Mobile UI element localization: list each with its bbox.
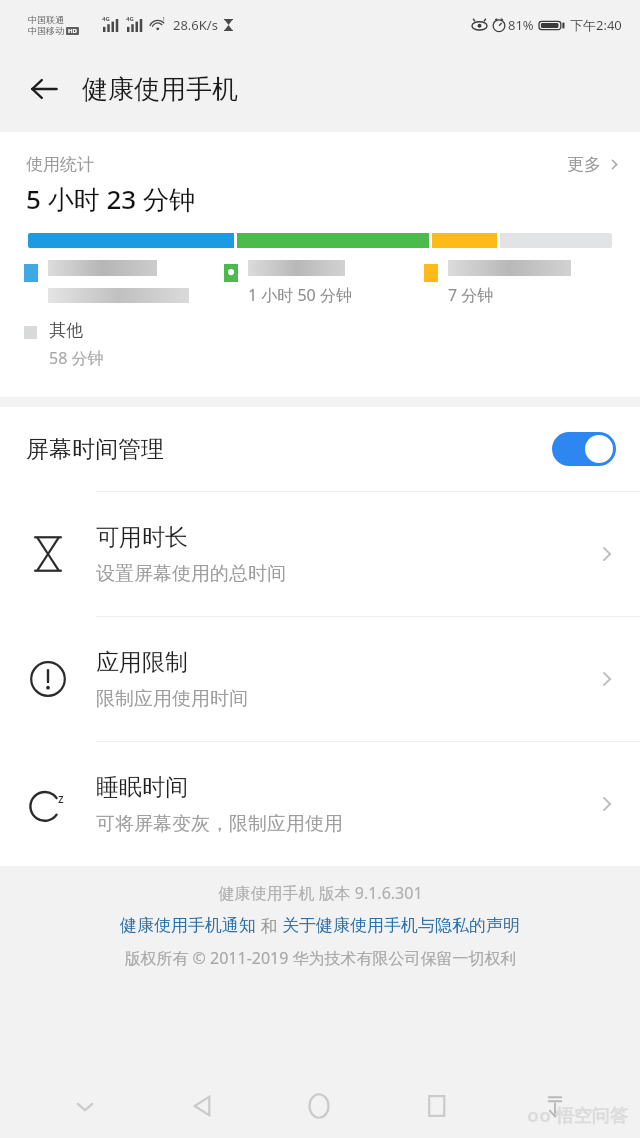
staticText: 其他 <box>49 320 83 341</box>
button[interactable]: Back <box>16 61 72 117</box>
button[interactable]: Home <box>260 1074 378 1138</box>
button[interactable]: 使用统计 <box>0 132 640 179</box>
staticText: 4G <box>126 15 134 23</box>
staticText: 屏幕时间管理 <box>26 435 164 464</box>
staticText: 58 分钟 <box>49 347 104 369</box>
staticText: 可将屏幕变灰，限制应用使用 <box>96 812 343 836</box>
button[interactable]: Toggle screen time management <box>552 432 616 466</box>
button[interactable]: Recents <box>378 1074 496 1138</box>
staticText: 和 <box>256 914 282 937</box>
staticText: 7 分钟 <box>448 284 494 306</box>
staticText: 中国联通 <box>28 14 64 25</box>
staticText: 健康使用手机 <box>82 73 238 106</box>
staticText: 版权所有 © 2011-2019 华为技术有限公司保留一切权利 <box>124 947 517 969</box>
button[interactable]: Download <box>496 1074 614 1138</box>
button[interactable]: Back <box>143 1074 260 1138</box>
button[interactable]: 可用时长 <box>0 492 640 616</box>
staticText: 28.6K/s <box>173 16 218 34</box>
staticText: HD <box>68 27 77 35</box>
staticText: 使用统计 <box>26 154 94 175</box>
button[interactable]: 健康使用手机通知 <box>120 915 256 936</box>
staticText: 1 小时 50 分钟 <box>248 284 352 306</box>
staticText: 1 <box>162 15 166 23</box>
staticText: 4G <box>102 15 110 23</box>
staticText: 限制应用使用时间 <box>96 687 248 711</box>
staticText: 下午2:40 <box>570 16 622 34</box>
button[interactable]: 屏幕时间管理 <box>0 407 640 491</box>
staticText: 健康使用手机 版本 9.1.6.301 <box>218 882 423 904</box>
staticText: 更多 <box>567 154 601 175</box>
staticText: 5 小时 23 分钟 <box>26 181 195 217</box>
button[interactable]: 应用限制 <box>0 617 640 741</box>
staticText: 设置屏幕使用的总时间 <box>96 562 286 586</box>
button[interactable]: z <box>0 742 640 866</box>
staticText: 睡眠时间 <box>96 773 188 802</box>
staticText: 81% <box>508 16 534 34</box>
staticText: z <box>58 790 64 806</box>
staticText: 可用时长 <box>96 523 188 552</box>
staticText: ᴏᴏ 悟空问答 <box>527 1103 628 1128</box>
staticText: 应用限制 <box>96 648 188 677</box>
staticText: 健康使用手机通知 <box>120 915 256 936</box>
staticText: 中国移动 <box>28 25 64 36</box>
button[interactable]: 关于健康使用手机与隐私的声明 <box>282 915 520 936</box>
staticText: 关于健康使用手机与隐私的声明 <box>282 915 520 936</box>
